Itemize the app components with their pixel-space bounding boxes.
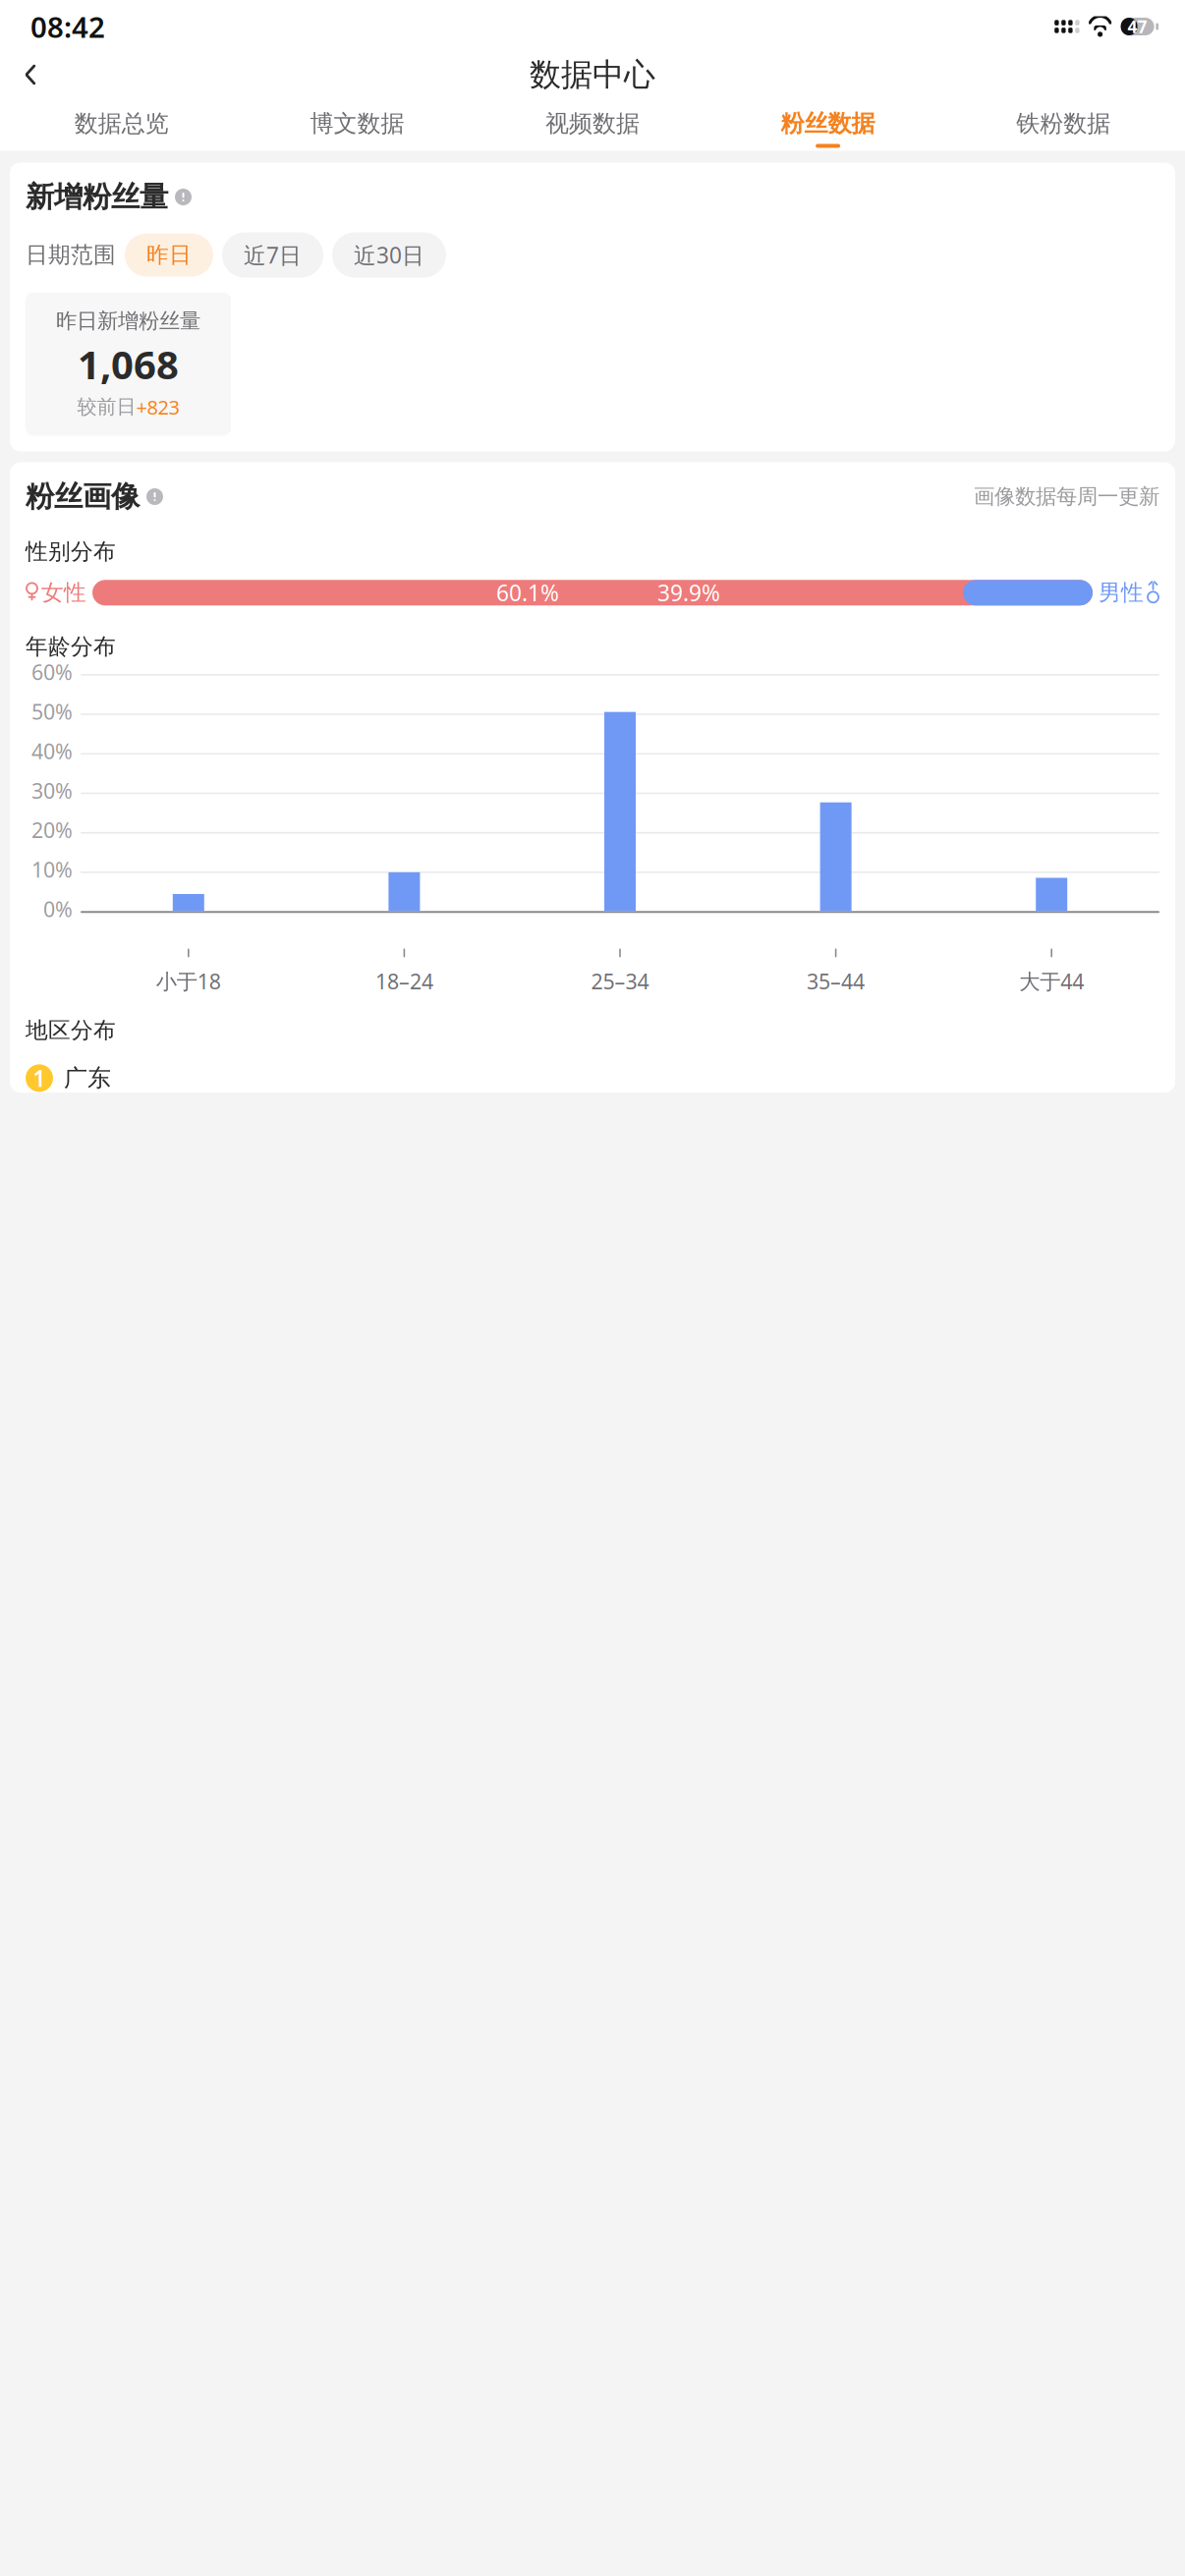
staticText: 35–44 bbox=[807, 967, 865, 995]
staticText: 1 bbox=[33, 1063, 46, 1093]
staticText: 18–24 bbox=[375, 967, 433, 995]
staticText: 数据中心 bbox=[530, 55, 655, 94]
staticText: 近30日 bbox=[354, 240, 424, 270]
button[interactable]: 数据总览 bbox=[4, 106, 239, 151]
staticText: 25–34 bbox=[591, 967, 649, 995]
staticText: 广东 bbox=[64, 1064, 111, 1093]
staticText: 女性 bbox=[41, 579, 86, 606]
button[interactable]: 粉丝数据 bbox=[710, 106, 946, 151]
staticText: 20% bbox=[31, 816, 73, 844]
staticText: 男性 bbox=[1099, 579, 1144, 606]
staticText: 0% bbox=[43, 895, 73, 923]
button[interactable]: 博文数据 bbox=[239, 106, 475, 151]
staticText: 画像数据每周一更新 bbox=[974, 484, 1159, 510]
staticText: 大于44 bbox=[1019, 967, 1084, 995]
staticText: 博文数据 bbox=[310, 109, 404, 138]
staticText: 铁粉数据 bbox=[1016, 109, 1111, 138]
staticText: +823 bbox=[136, 394, 179, 420]
staticText: 10% bbox=[31, 856, 73, 883]
staticText: 新增粉丝量 bbox=[26, 179, 168, 215]
button[interactable]: 视频数据 bbox=[475, 106, 710, 151]
button[interactable]: 昨日 bbox=[125, 233, 213, 276]
staticText: 近7日 bbox=[244, 240, 302, 270]
staticText: 60% bbox=[31, 658, 73, 686]
staticText: 50% bbox=[31, 698, 73, 725]
staticText: 40% bbox=[31, 737, 73, 765]
staticText: 数据总览 bbox=[74, 109, 169, 138]
staticText: 30% bbox=[31, 777, 73, 804]
staticText: 视频数据 bbox=[545, 109, 640, 138]
staticText: 昨日新增粉丝量 bbox=[56, 308, 200, 334]
button[interactable]: 近30日 bbox=[332, 232, 446, 278]
staticText: 日期范围 bbox=[26, 241, 116, 269]
staticText: 较前日 bbox=[77, 395, 136, 419]
staticText: 性别分布 bbox=[26, 538, 116, 565]
staticText: 粉丝画像 bbox=[26, 479, 140, 514]
staticText: 小于18 bbox=[156, 967, 221, 995]
staticText: 昨日 bbox=[146, 241, 192, 269]
staticText: 47 bbox=[1128, 15, 1147, 38]
staticText: 39.9% bbox=[657, 578, 720, 607]
staticText: 1,068 bbox=[78, 338, 179, 390]
button[interactable]: 铁粉数据 bbox=[946, 106, 1181, 151]
staticText: 08:42 bbox=[30, 7, 105, 46]
button[interactable]: 近7日 bbox=[222, 232, 323, 278]
staticText: 60.1% bbox=[496, 578, 559, 607]
staticText: 粉丝数据 bbox=[781, 109, 875, 138]
button[interactable]: Back bbox=[8, 52, 53, 97]
staticText: 地区分布 bbox=[26, 1017, 116, 1044]
staticText: 年龄分布 bbox=[26, 633, 116, 660]
